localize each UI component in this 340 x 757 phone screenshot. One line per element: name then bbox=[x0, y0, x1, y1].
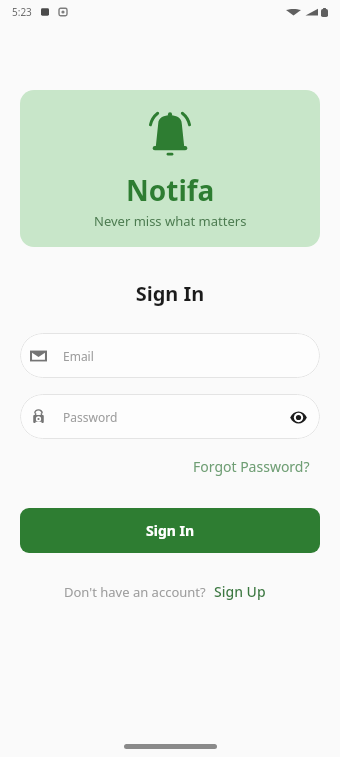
button[interactable]: Forgot Password? bbox=[189, 454, 314, 479]
staticText: Forgot Password? bbox=[193, 457, 310, 476]
button[interactable]: Email bbox=[20, 333, 320, 378]
button[interactable]: Show password bbox=[289, 408, 307, 426]
staticText: Email bbox=[63, 348, 94, 364]
staticText: Don't have an account? bbox=[64, 583, 206, 601]
staticText: Never miss what matters bbox=[94, 212, 247, 230]
staticText: Notifa bbox=[126, 171, 215, 209]
button[interactable]: Sign Up bbox=[206, 580, 266, 603]
staticText: Sign Up bbox=[214, 582, 266, 601]
button[interactable]: Sign In bbox=[20, 508, 320, 553]
staticText: Sign In bbox=[146, 521, 195, 540]
staticText: Password bbox=[63, 409, 118, 425]
staticText: Sign In bbox=[0, 280, 340, 307]
staticText: 5:23 bbox=[12, 5, 32, 19]
button[interactable]: Password bbox=[20, 394, 320, 439]
